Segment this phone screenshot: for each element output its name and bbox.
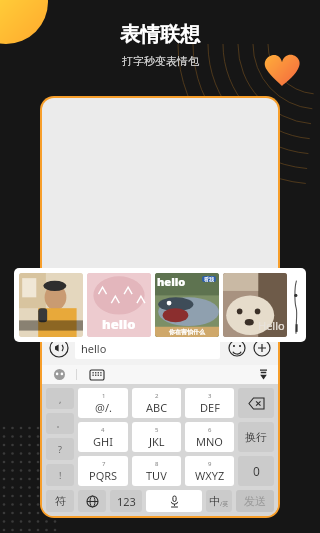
button[interactable]: 1 — [78, 388, 128, 418]
button[interactable]: Language — [78, 490, 106, 512]
button[interactable]: hello — [81, 337, 220, 359]
staticText: TUV — [146, 468, 167, 483]
staticText: 2 — [155, 392, 159, 400]
button[interactable]: Hello — [223, 273, 287, 337]
staticText: GHI — [93, 434, 113, 449]
button[interactable]: Stickers — [42, 365, 76, 384]
staticText: @/. — [95, 400, 112, 415]
button[interactable]: Hide keyboard — [248, 365, 278, 384]
button[interactable]: 中 — [206, 490, 232, 512]
staticText: 1 — [102, 392, 106, 400]
button[interactable]: Keyboard — [77, 365, 117, 384]
staticText: 123 — [117, 494, 136, 509]
button[interactable]: 8 — [132, 456, 181, 486]
staticText: PQRS — [89, 468, 118, 483]
button[interactable]: hello — [155, 273, 219, 337]
staticText: hello — [81, 341, 107, 356]
staticText: 表情联想 — [120, 22, 200, 47]
button[interactable]: 。 — [46, 413, 74, 434]
staticText: 7 — [102, 460, 106, 468]
staticText: JKL — [149, 434, 165, 449]
staticText: ! — [59, 469, 62, 481]
staticText: ABC — [146, 400, 168, 415]
staticText: 发送 — [244, 494, 266, 508]
staticText: 中 — [209, 494, 220, 508]
staticText: 3 — [208, 392, 212, 400]
staticText: DEF — [200, 400, 220, 415]
staticText: 4 — [101, 426, 105, 434]
staticText: 看我 — [204, 276, 214, 282]
button[interactable]: 0 — [238, 456, 274, 486]
button[interactable]: 6 — [185, 422, 234, 452]
button[interactable]: 换行 — [238, 422, 274, 452]
staticText: hello — [102, 315, 136, 333]
button[interactable]: 2 — [132, 388, 181, 418]
button[interactable]: More — [253, 339, 271, 357]
button[interactable]: 3 — [185, 388, 234, 418]
staticText: 换行 — [245, 430, 267, 444]
staticText: 你在害怕什么 — [169, 328, 205, 336]
button[interactable]: ! — [46, 464, 74, 486]
button[interactable]: ? — [46, 438, 74, 460]
button[interactable]: 9 — [185, 456, 234, 486]
staticText: Hello — [258, 318, 285, 333]
staticText: MNO — [196, 434, 223, 449]
button[interactable]: 123 — [110, 490, 142, 512]
button[interactable]: Voice input — [49, 338, 69, 358]
staticText: , — [59, 393, 62, 405]
staticText: WXYZ — [195, 468, 225, 483]
button[interactable]: Backspace — [238, 388, 274, 418]
button[interactable]: , — [46, 388, 74, 409]
button[interactable] — [19, 273, 83, 337]
staticText: /英 — [220, 500, 229, 508]
staticText: 5 — [155, 426, 159, 434]
staticText: 6 — [208, 426, 212, 434]
staticText: 符 — [55, 494, 66, 508]
button[interactable]: Space / voice — [146, 490, 202, 512]
staticText: 8 — [155, 460, 159, 468]
staticText: hello — [157, 274, 186, 289]
button[interactable]: 符 — [46, 490, 74, 512]
staticText: 打字秒变表情包 — [122, 54, 199, 68]
button[interactable]: 5 — [132, 422, 181, 452]
button[interactable]: 7 — [78, 456, 128, 486]
staticText: ? — [58, 443, 62, 455]
button[interactable]: 发送 — [236, 490, 274, 512]
button[interactable]: Emoji — [228, 339, 246, 357]
button[interactable] — [291, 273, 301, 337]
staticText: 。 — [56, 418, 65, 429]
button[interactable]: 4 — [78, 422, 128, 452]
staticText: 9 — [208, 460, 212, 468]
staticText: 0 — [253, 463, 260, 479]
button[interactable]: hello — [87, 273, 151, 337]
